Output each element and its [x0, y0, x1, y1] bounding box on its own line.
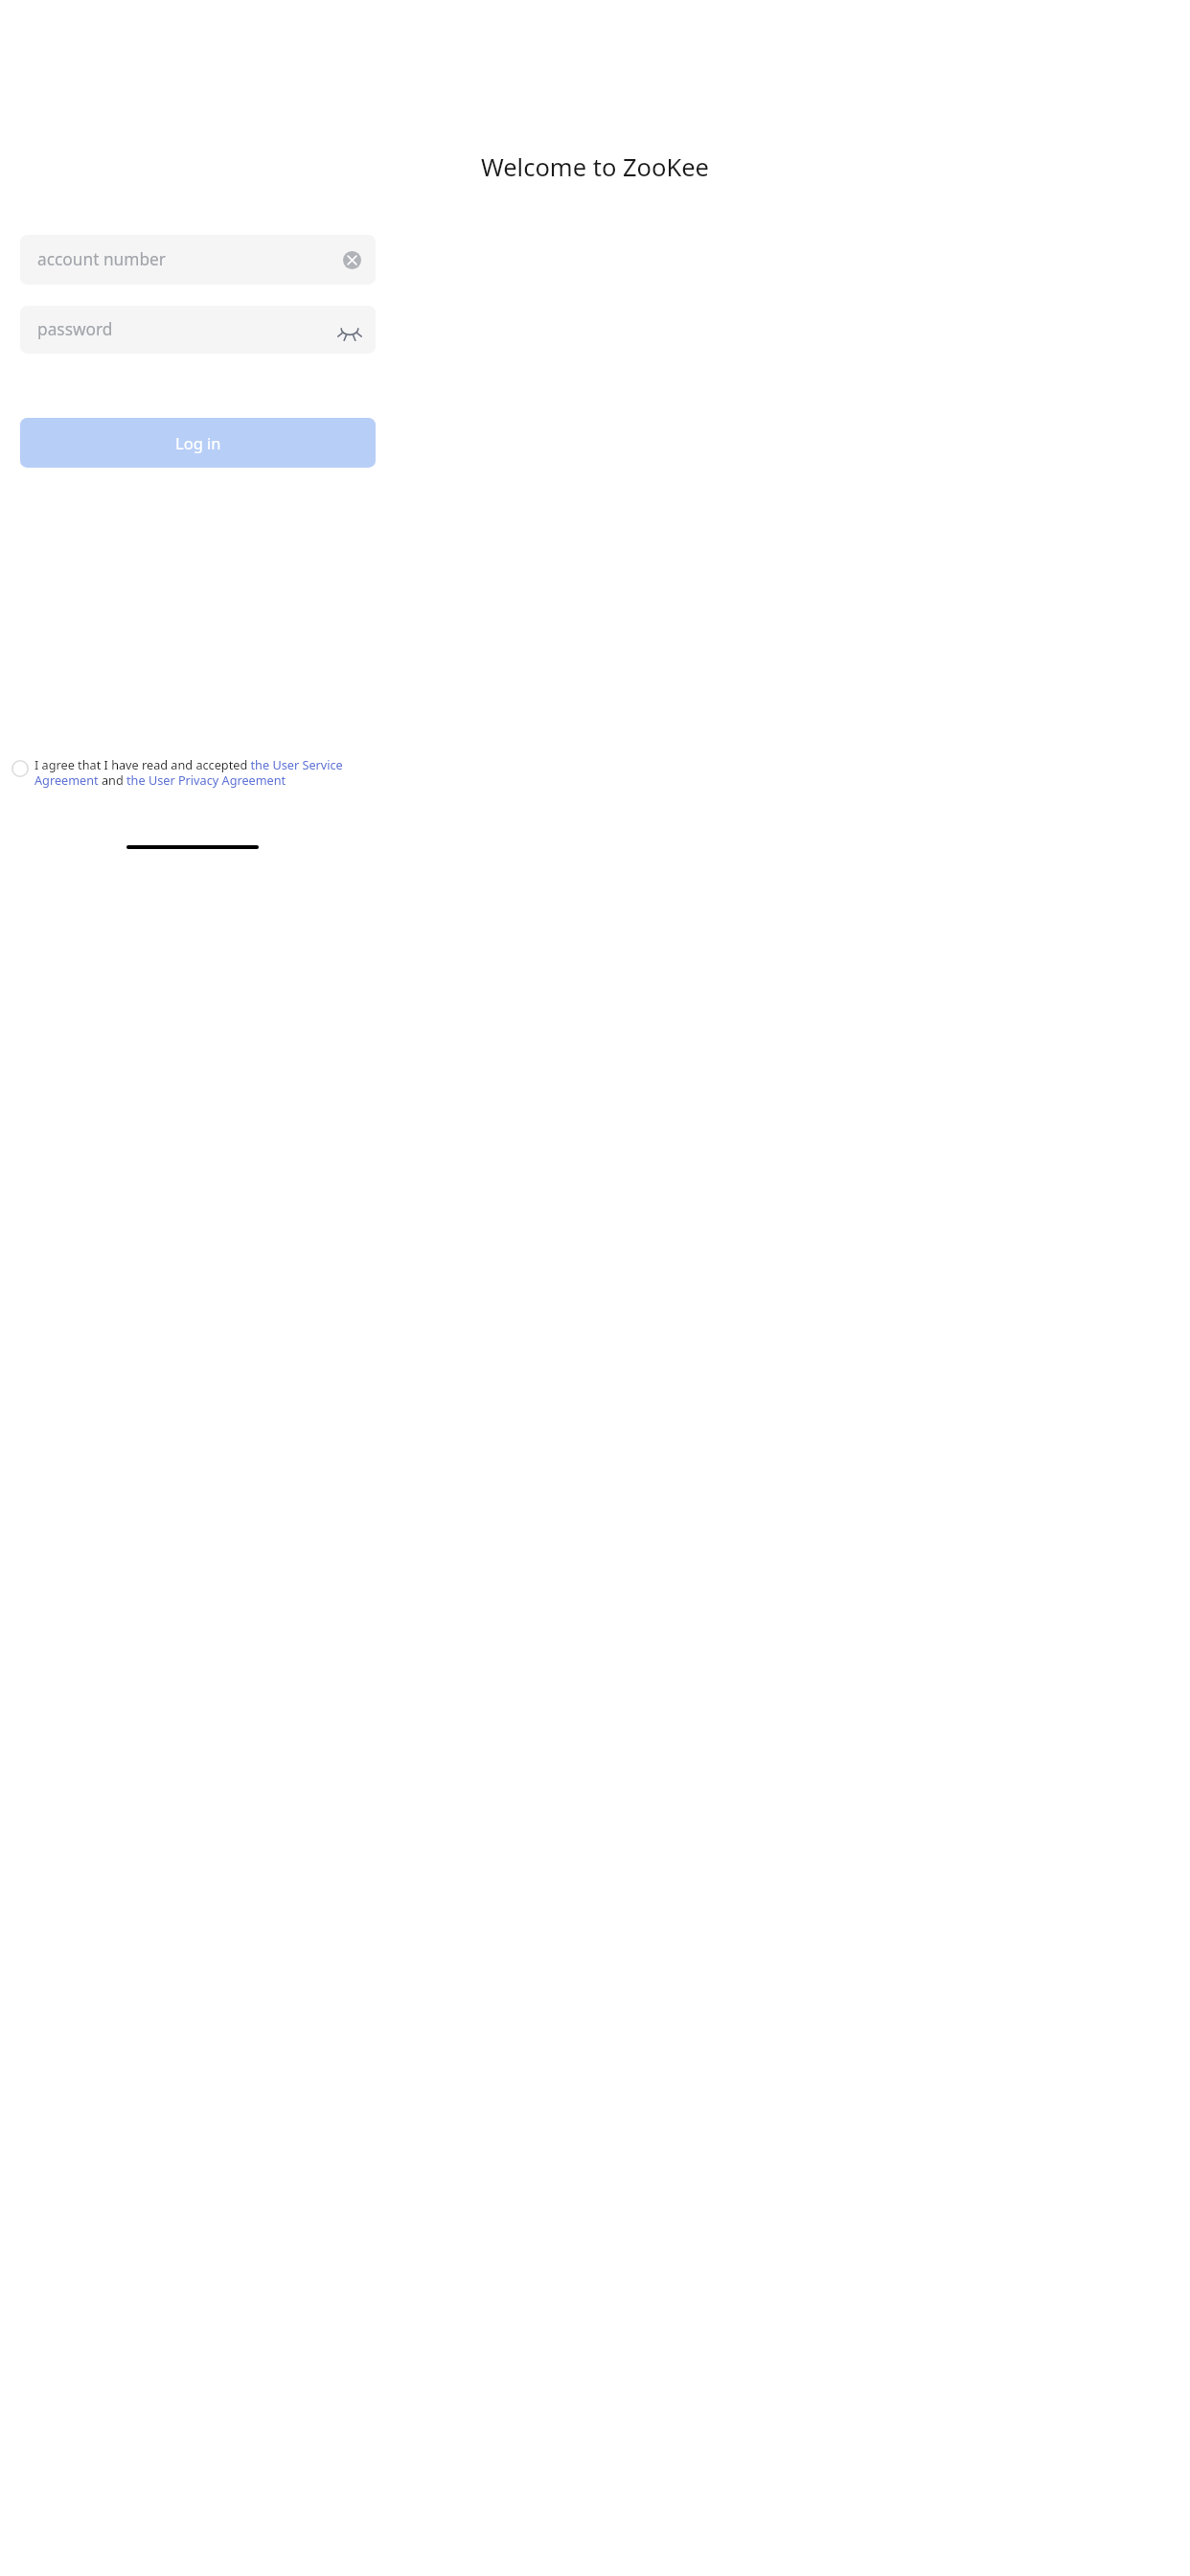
- button[interactable]: Clear account number: [341, 249, 362, 270]
- staticText: Welcome to ZooKee: [0, 150, 1190, 184]
- staticText: I agree that I have read and accepted th…: [34, 756, 387, 788]
- staticText: Log in: [175, 432, 221, 453]
- button[interactable]: Agree to terms: [10, 756, 387, 788]
- button[interactable]: password: [20, 306, 376, 354]
- other: Agree to terms: [10, 758, 30, 778]
- staticText: password: [37, 318, 337, 341]
- staticText: account number: [37, 248, 341, 271]
- button[interactable]: account number: [20, 235, 376, 285]
- button[interactable]: Show password: [337, 317, 362, 342]
- button[interactable]: Log in: [20, 418, 376, 468]
